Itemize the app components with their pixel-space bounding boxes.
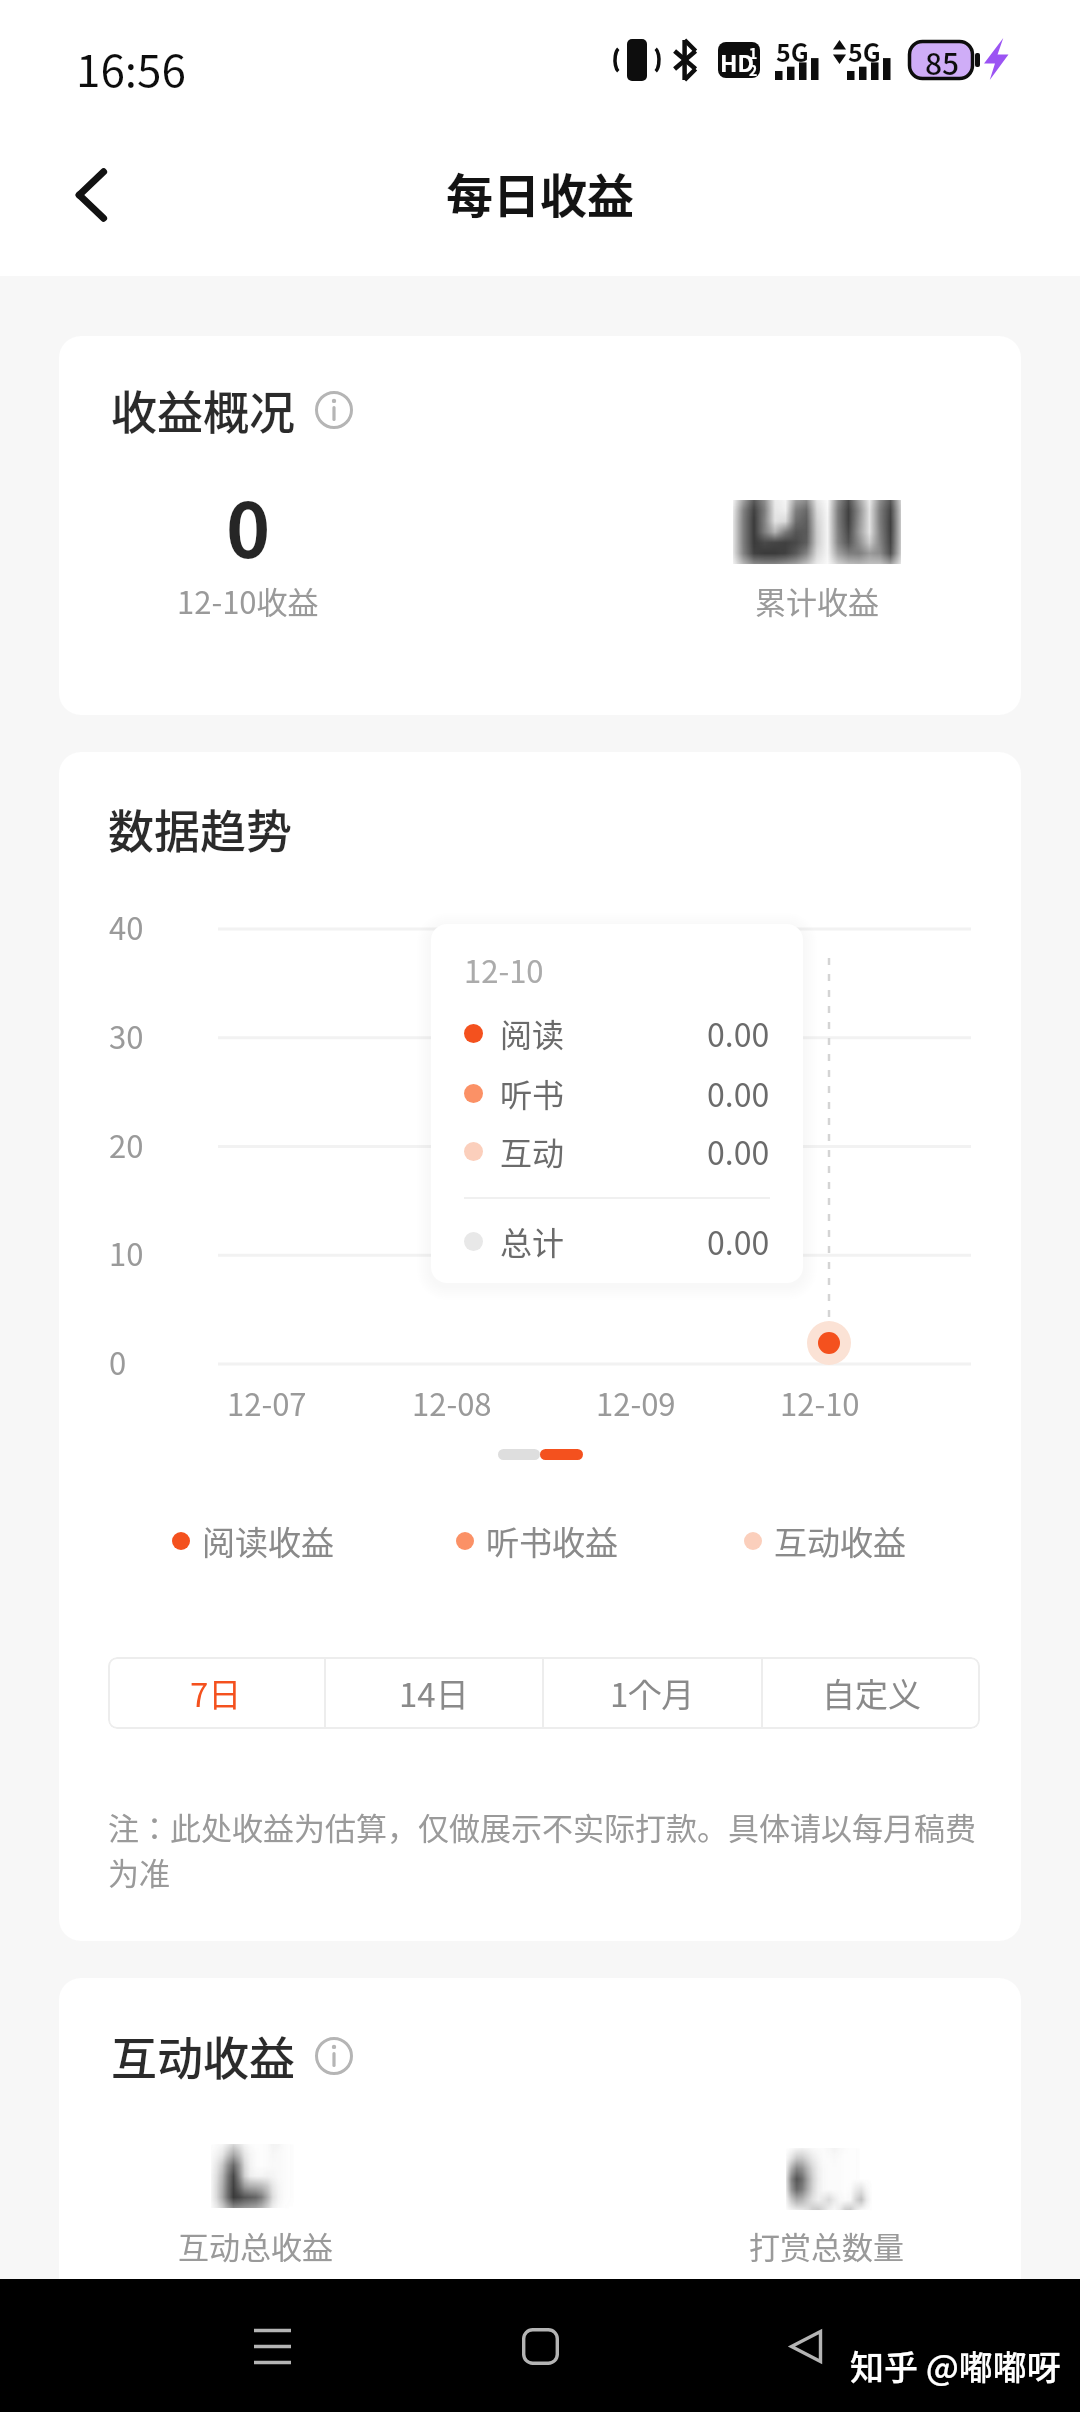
staticText: 0: [226, 471, 271, 571]
button[interactable]: Recents: [227, 2301, 317, 2391]
staticText: 0.00: [707, 1218, 770, 1264]
button[interactable]: Back: [761, 2301, 851, 2391]
staticText: 5G: [848, 33, 881, 69]
button[interactable]: 1个月: [544, 1657, 761, 1729]
staticText: 12-09: [596, 1380, 676, 1425]
staticText: 注：此处收益为估算，仅做展示不实际打款。具体请以每月稿费为准: [108, 1804, 988, 1894]
staticText: 20: [109, 1122, 144, 1167]
staticText: 1个月: [610, 1669, 695, 1717]
staticText: 听书收益: [486, 1517, 618, 1565]
staticText: 累计收益: [755, 578, 879, 623]
staticText: 12-07: [227, 1380, 307, 1425]
staticText: 12-10: [464, 947, 544, 992]
staticText: 12-10收益: [177, 578, 319, 623]
staticText: 每日收益: [446, 158, 634, 226]
staticText: HD: [720, 45, 754, 78]
staticText: 5G: [776, 33, 809, 69]
staticText: 7日: [190, 1669, 242, 1717]
staticText: 知乎 @嘟嘟呀: [850, 2341, 1061, 2390]
staticText: 85: [925, 40, 960, 80]
staticText: 0: [109, 1339, 127, 1384]
staticText: 0.00: [707, 1070, 770, 1116]
staticText: 数据趋势: [108, 795, 292, 862]
button[interactable]: Back: [42, 145, 142, 245]
staticText: 12-10: [780, 1380, 860, 1425]
staticText: 互动收益: [774, 1517, 906, 1565]
staticText: 16:56: [76, 36, 186, 100]
staticText: 总计: [500, 1218, 565, 1264]
staticText: 收益概况: [111, 376, 295, 443]
staticText: 互动总收益: [178, 2223, 333, 2268]
staticText: 阅读: [500, 1010, 565, 1056]
staticText: 0.00: [707, 1128, 770, 1174]
staticText: 自定义: [822, 1669, 921, 1717]
button[interactable]: 14日: [326, 1657, 542, 1729]
staticText: 2: [749, 60, 758, 78]
staticText: 14日: [399, 1669, 469, 1717]
staticText: 互动: [500, 1128, 565, 1174]
staticText: 听书: [500, 1070, 565, 1116]
staticText: 40: [109, 904, 144, 949]
staticText: 10: [109, 1230, 144, 1275]
staticText: 30: [109, 1013, 144, 1058]
staticText: 打赏总数量: [749, 2223, 904, 2268]
staticText: 互动收益: [111, 2022, 295, 2089]
button[interactable]: 自定义: [763, 1657, 980, 1729]
staticText: 阅读收益: [202, 1517, 334, 1565]
staticText: 0.00: [707, 1010, 770, 1056]
staticText: 1: [749, 43, 758, 63]
button[interactable]: Home: [495, 2301, 585, 2391]
staticText: 12-08: [412, 1380, 492, 1425]
button[interactable]: 7日: [108, 1657, 324, 1729]
